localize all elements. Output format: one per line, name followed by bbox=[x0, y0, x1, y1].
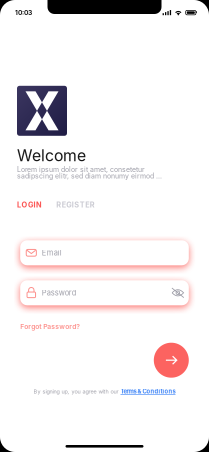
staticText: Welcome bbox=[17, 146, 86, 165]
staticText: By signing up, you agree with our bbox=[33, 388, 120, 395]
staticText: Lorem ipsum dolor sit amet, consetetur s… bbox=[17, 165, 162, 180]
button[interactable]: Continue bbox=[154, 343, 189, 378]
button[interactable]: Password bbox=[20, 280, 189, 305]
button[interactable]: Email bbox=[20, 240, 189, 265]
button[interactable]: Forgot Password? bbox=[20, 322, 80, 331]
staticText: Email bbox=[42, 248, 62, 257]
staticText: REGISTER bbox=[56, 200, 95, 209]
staticText: Password bbox=[42, 288, 77, 297]
staticText: 10:03 bbox=[15, 8, 32, 17]
staticText: Forgot Password? bbox=[20, 322, 80, 331]
button[interactable]: REGISTER bbox=[56, 200, 95, 209]
button[interactable]: Terms & Conditions bbox=[120, 388, 175, 395]
staticText: Terms & Conditions bbox=[120, 388, 175, 395]
button[interactable]: LOGIN bbox=[17, 200, 42, 209]
staticText: LOGIN bbox=[17, 200, 42, 209]
